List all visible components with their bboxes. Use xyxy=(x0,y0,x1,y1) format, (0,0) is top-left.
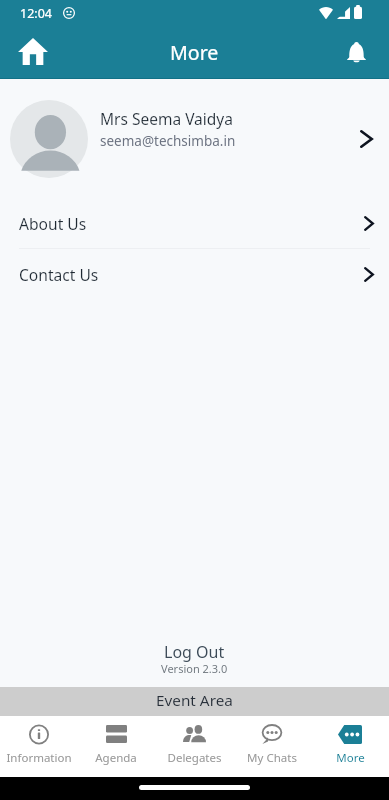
button[interactable]: More xyxy=(311,716,389,777)
staticText: seema@techsimba.in xyxy=(100,132,236,150)
button[interactable]: My Chats xyxy=(233,716,311,777)
staticText: 12:04 xyxy=(20,5,52,22)
staticText: Event Area xyxy=(156,690,233,711)
button[interactable]: Delegates xyxy=(155,716,233,777)
button[interactable]: Information xyxy=(0,716,77,777)
button[interactable]: Home xyxy=(0,26,65,79)
button[interactable]: Notifications xyxy=(324,26,389,79)
staticText: More xyxy=(170,39,219,66)
staticText: Mrs Seema Vaidya xyxy=(100,108,233,129)
button[interactable]: Agenda xyxy=(77,716,155,777)
staticText: Agenda xyxy=(95,750,137,766)
staticText: Delegates xyxy=(167,750,222,766)
staticText: My Chats xyxy=(247,750,297,766)
staticText: Information xyxy=(6,750,72,766)
button[interactable]: Mrs Seema Vaidya xyxy=(0,79,389,198)
staticText: More xyxy=(336,750,365,766)
staticText: Log Out xyxy=(164,641,225,663)
button[interactable]: Contact Us xyxy=(0,249,389,299)
staticText: Version 2.3.0 xyxy=(161,661,228,676)
button[interactable]: Log Out xyxy=(144,639,245,665)
staticText: About Us xyxy=(19,213,364,234)
button[interactable]: About Us xyxy=(0,198,389,248)
staticText: Contact Us xyxy=(19,264,364,285)
